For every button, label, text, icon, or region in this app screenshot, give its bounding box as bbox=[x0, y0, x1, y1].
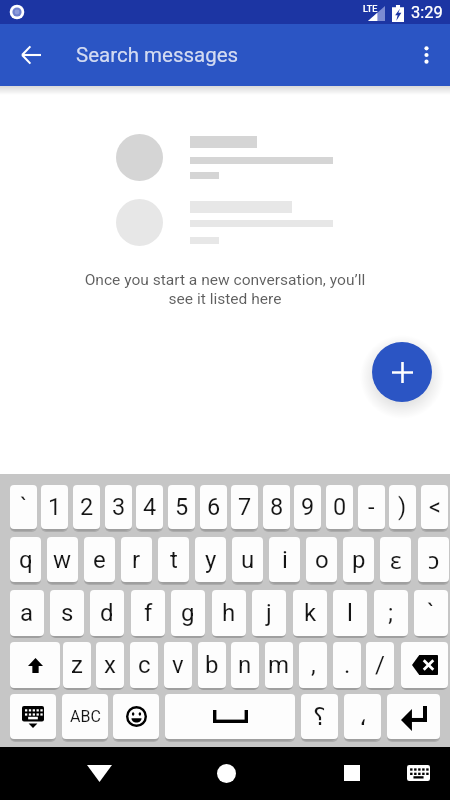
button[interactable]: 8 bbox=[263, 485, 290, 529]
staticText: t bbox=[170, 546, 178, 574]
button[interactable]: e bbox=[84, 537, 115, 582]
button[interactable]: g bbox=[171, 590, 205, 636]
button[interactable]: Shift bbox=[10, 642, 60, 688]
button[interactable]: d bbox=[90, 590, 124, 636]
staticText: Once you start a new conversation, you’l… bbox=[79, 271, 371, 308]
staticText: . bbox=[344, 651, 351, 679]
button[interactable]: Back bbox=[7, 33, 55, 77]
staticText: c bbox=[138, 651, 151, 679]
button[interactable]: / bbox=[366, 642, 394, 688]
button[interactable]: a bbox=[10, 590, 44, 636]
button[interactable]: f bbox=[131, 590, 165, 636]
button[interactable]: More options bbox=[404, 33, 448, 77]
staticText: p bbox=[352, 546, 366, 574]
staticText: g bbox=[181, 599, 195, 627]
button[interactable]: Back bbox=[77, 751, 121, 795]
staticText: q bbox=[19, 546, 33, 574]
staticText: n bbox=[238, 651, 252, 679]
button[interactable]: k bbox=[293, 590, 327, 636]
button[interactable]: m bbox=[265, 642, 293, 688]
button[interactable]: 4 bbox=[136, 485, 163, 529]
button[interactable]: Recents bbox=[330, 751, 374, 795]
button[interactable]: Hide keyboard bbox=[10, 694, 56, 739]
staticText: ؟ bbox=[313, 703, 326, 731]
button[interactable]: h bbox=[212, 590, 246, 636]
staticText: v bbox=[172, 651, 184, 679]
button[interactable]: 7 bbox=[231, 485, 258, 529]
button[interactable]: ` bbox=[414, 590, 448, 636]
button[interactable]: l bbox=[333, 590, 367, 636]
button[interactable]: v bbox=[164, 642, 192, 688]
button[interactable]: Home bbox=[204, 751, 248, 795]
other: Shift bbox=[28, 658, 43, 673]
button[interactable]: . bbox=[333, 642, 361, 688]
button[interactable]: Enter bbox=[387, 694, 440, 739]
staticText: r bbox=[132, 546, 141, 574]
other: Space bbox=[213, 710, 248, 723]
button[interactable]: b bbox=[198, 642, 226, 688]
button[interactable]: 9 bbox=[294, 485, 321, 529]
button[interactable]: ɛ bbox=[380, 537, 411, 582]
button[interactable]: ؟ bbox=[301, 694, 338, 739]
button[interactable]: z bbox=[63, 642, 91, 688]
staticText: x bbox=[104, 651, 116, 679]
staticText: 7 bbox=[238, 493, 252, 521]
button[interactable]: o bbox=[306, 537, 337, 582]
button[interactable]: j bbox=[252, 590, 286, 636]
button[interactable]: t bbox=[158, 537, 189, 582]
button[interactable]: q bbox=[10, 537, 41, 582]
button[interactable]: 6 bbox=[200, 485, 227, 529]
button[interactable]: 3 bbox=[105, 485, 132, 529]
button[interactable]: 1 bbox=[41, 485, 68, 529]
staticText: Search messages bbox=[76, 43, 239, 67]
staticText: - bbox=[368, 493, 375, 521]
other: Emoji bbox=[126, 706, 147, 727]
button[interactable]: Backspace bbox=[401, 642, 448, 688]
staticText: 2 bbox=[80, 493, 94, 521]
button[interactable]: w bbox=[47, 537, 78, 582]
button[interactable]: Emoji bbox=[113, 694, 159, 739]
button[interactable]: < bbox=[421, 485, 448, 529]
other: Enter bbox=[401, 706, 427, 727]
staticText: i bbox=[282, 546, 288, 574]
staticText: 3:29 bbox=[411, 3, 443, 22]
button[interactable]: x bbox=[96, 642, 124, 688]
staticText: ) bbox=[398, 493, 407, 521]
button[interactable]: , bbox=[299, 642, 327, 688]
button[interactable]: n bbox=[231, 642, 259, 688]
staticText: s bbox=[61, 599, 74, 627]
button[interactable]: p bbox=[343, 537, 374, 582]
button[interactable]: u bbox=[232, 537, 263, 582]
button[interactable]: Space bbox=[165, 694, 295, 739]
button[interactable]: ) bbox=[389, 485, 416, 529]
button[interactable]: New conversation bbox=[372, 342, 432, 402]
staticText: ، bbox=[359, 703, 367, 731]
button[interactable]: - bbox=[358, 485, 385, 529]
button[interactable]: c bbox=[130, 642, 158, 688]
button[interactable]: r bbox=[121, 537, 152, 582]
button[interactable]: 2 bbox=[73, 485, 100, 529]
staticText: y bbox=[205, 546, 217, 574]
staticText: 6 bbox=[207, 493, 221, 521]
button[interactable]: ` bbox=[10, 485, 37, 529]
staticText: a bbox=[20, 599, 34, 627]
staticText: w bbox=[53, 546, 72, 574]
button[interactable]: 5 bbox=[168, 485, 195, 529]
staticText: 5 bbox=[175, 493, 189, 521]
button[interactable]: i bbox=[269, 537, 300, 582]
staticText: h bbox=[222, 599, 236, 627]
button[interactable]: Show keyboard bbox=[396, 751, 440, 795]
other: Backspace bbox=[412, 655, 438, 675]
button[interactable]: y bbox=[195, 537, 226, 582]
button[interactable]: ɔ bbox=[418, 537, 449, 582]
button[interactable]: ; bbox=[374, 590, 408, 636]
button[interactable]: ABC bbox=[62, 694, 108, 739]
button[interactable]: ، bbox=[344, 694, 381, 739]
other: Hide keyboard bbox=[22, 706, 44, 728]
button[interactable]: 0 bbox=[326, 485, 353, 529]
staticText: o bbox=[315, 546, 329, 574]
staticText: < bbox=[429, 493, 441, 521]
staticText: 4 bbox=[143, 493, 157, 521]
button[interactable]: s bbox=[50, 590, 84, 636]
staticText: LTE bbox=[363, 4, 378, 15]
